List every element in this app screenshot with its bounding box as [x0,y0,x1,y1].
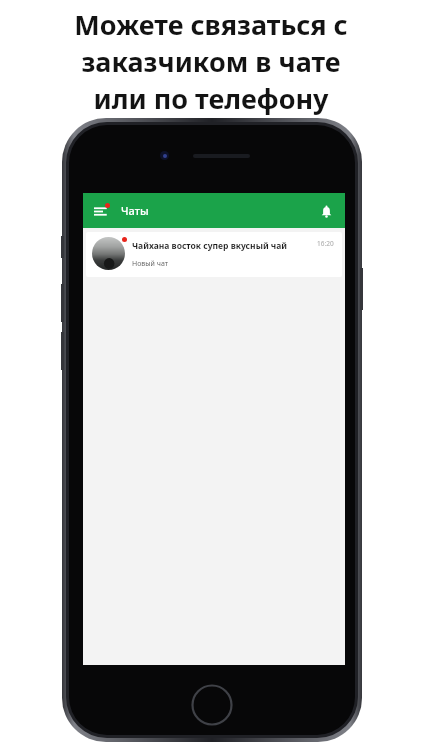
button[interactable]: Notifications [315,200,337,222]
button[interactable]: Чайхана восток супер вкусный чай [86,232,342,277]
staticText: Чайхана восток супер вкусный чай [132,240,288,252]
staticText: 16:20 [317,239,334,248]
staticText: заказчиком в чате [81,43,341,80]
staticText: или по телефону [93,80,329,117]
staticText: Можете связаться с [74,6,348,43]
staticText: Чаты [121,203,149,218]
button[interactable]: Open navigation menu [90,200,112,222]
staticText: Новый чат [132,259,168,269]
